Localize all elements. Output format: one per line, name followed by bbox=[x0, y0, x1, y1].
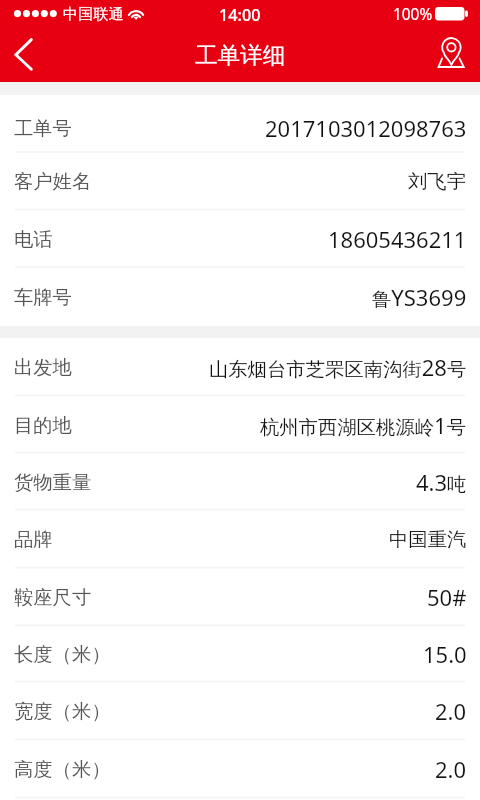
staticText: 中国重汽 bbox=[389, 527, 467, 551]
staticText: 2.0 bbox=[435, 754, 467, 784]
staticText: 中国联通 bbox=[63, 4, 124, 23]
staticText: 长度（米） bbox=[14, 642, 111, 666]
staticText: 18605436211 bbox=[328, 224, 467, 254]
staticText: 宽度（米） bbox=[14, 699, 111, 723]
staticText: 电话 bbox=[14, 227, 53, 251]
button[interactable]: 品牌 bbox=[0, 510, 480, 568]
staticText: 杭州市西湖区桃源岭1号 bbox=[260, 410, 467, 440]
staticText: 2017103012098763 bbox=[265, 113, 467, 143]
button[interactable]: 长度（米） bbox=[0, 626, 480, 682]
staticText: 100% bbox=[393, 4, 433, 25]
staticText: 50# bbox=[427, 582, 467, 612]
staticText: 客户姓名 bbox=[14, 169, 92, 193]
button[interactable]: 出发地 bbox=[0, 338, 480, 396]
button[interactable]: 目的地 bbox=[0, 396, 480, 453]
staticText: 4.3吨 bbox=[416, 467, 467, 497]
staticText: 15.0 bbox=[423, 639, 467, 669]
button[interactable]: Map location bbox=[428, 28, 480, 82]
staticText: 鲁YS3699 bbox=[372, 282, 467, 312]
staticText: 刘飞宇 bbox=[408, 169, 467, 193]
staticText: 出发地 bbox=[14, 355, 72, 379]
button[interactable]: 鞍座尺寸 bbox=[0, 568, 480, 626]
staticText: 车牌号 bbox=[14, 285, 72, 309]
button[interactable]: 高度（米） bbox=[0, 740, 480, 798]
staticText: 14:00 bbox=[219, 4, 261, 26]
button[interactable]: 车牌号 bbox=[0, 268, 480, 326]
staticText: 2.0 bbox=[435, 696, 467, 726]
staticText: 山东烟台市芝罘区南沟街28号 bbox=[209, 352, 467, 382]
button[interactable]: 宽度（米） bbox=[0, 682, 480, 740]
button[interactable]: 工单号 bbox=[0, 95, 480, 152]
staticText: 目的地 bbox=[14, 413, 72, 437]
staticText: 工单详细 bbox=[195, 41, 286, 69]
staticText: 品牌 bbox=[14, 527, 53, 551]
staticText: 鞍座尺寸 bbox=[14, 585, 92, 609]
staticText: 高度（米） bbox=[14, 757, 111, 781]
staticText: 货物重量 bbox=[14, 470, 92, 494]
button[interactable]: 货物重量 bbox=[0, 453, 480, 510]
staticText: 工单号 bbox=[14, 116, 72, 140]
button[interactable]: Back bbox=[0, 28, 52, 82]
button[interactable]: 电话 bbox=[0, 210, 480, 268]
button[interactable]: 客户姓名 bbox=[0, 152, 480, 210]
